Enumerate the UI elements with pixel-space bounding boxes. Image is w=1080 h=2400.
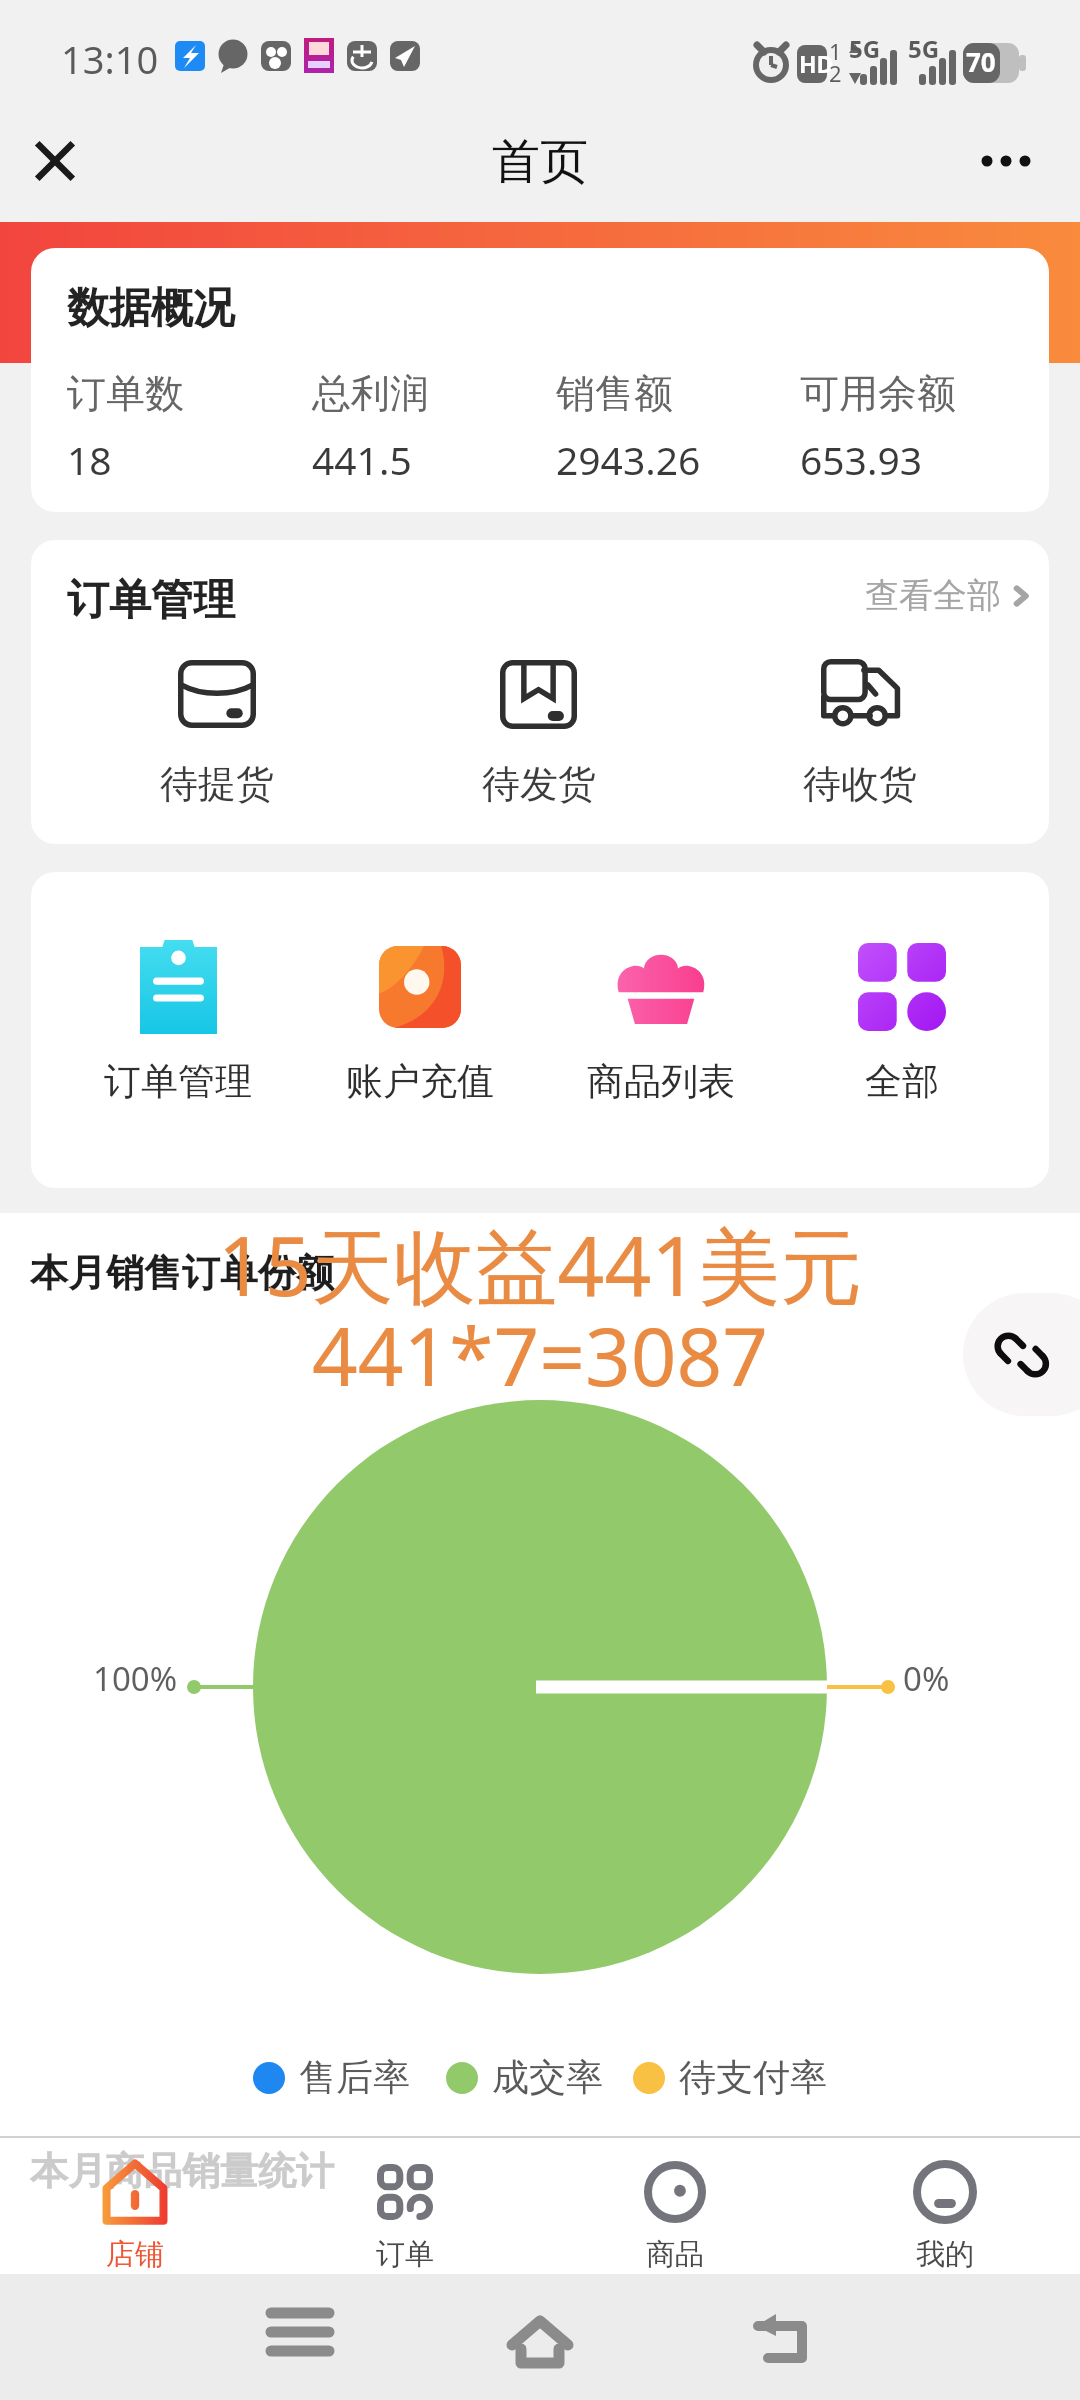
button[interactable]: 账户充值 bbox=[299, 940, 540, 1105]
staticText: 441.5 bbox=[312, 433, 412, 486]
staticText: 总利润 bbox=[312, 369, 429, 418]
staticText: 商品 bbox=[646, 2236, 704, 2273]
button[interactable]: 查看全部 bbox=[865, 574, 1049, 617]
staticText: 本月销售订单份额 bbox=[30, 1249, 334, 1297]
button[interactable]: 待发货 bbox=[378, 658, 699, 808]
staticText: 1 bbox=[829, 36, 842, 66]
button[interactable]: 数据概况 bbox=[31, 248, 1049, 512]
staticText: 成交率 bbox=[492, 2054, 603, 2101]
staticText: 数据概况 bbox=[67, 282, 235, 335]
staticText: 我的 bbox=[916, 2236, 974, 2273]
button[interactable]: Copy link bbox=[963, 1293, 1080, 1416]
button[interactable]: 我的 bbox=[810, 2138, 1080, 2274]
staticText: 全部 bbox=[865, 1058, 939, 1105]
staticText: 订单管理 bbox=[104, 1058, 252, 1105]
staticText: 2 bbox=[829, 58, 842, 88]
staticText: 账户充值 bbox=[346, 1058, 494, 1105]
staticText: 订单管理 bbox=[67, 574, 235, 627]
staticText: 本月商品销量统计 bbox=[30, 2147, 334, 2195]
staticText: 售后率 bbox=[299, 2054, 410, 2101]
staticText: 5G bbox=[849, 32, 881, 65]
staticText: 18 bbox=[67, 433, 112, 486]
button[interactable]: 待收货 bbox=[699, 658, 1020, 808]
button[interactable]: More options bbox=[977, 113, 1073, 209]
staticText: 待发货 bbox=[482, 760, 596, 808]
staticText: 0% bbox=[903, 1656, 950, 1701]
staticText: 70 bbox=[966, 44, 996, 79]
staticText: 2943.26 bbox=[556, 433, 701, 486]
button[interactable]: 全部 bbox=[781, 940, 1022, 1105]
button[interactable]: 订单 bbox=[270, 2138, 540, 2274]
button[interactable]: 待提货 bbox=[56, 658, 378, 808]
button[interactable]: Close bbox=[7, 113, 103, 209]
staticText: 销售额 bbox=[556, 369, 673, 418]
button[interactable]: 订单管理 bbox=[57, 940, 299, 1105]
staticText: 可用余额 bbox=[800, 369, 956, 418]
staticText: 15天收益441美元 bbox=[0, 1208, 1080, 1320]
staticText: 订单 bbox=[376, 2236, 434, 2273]
staticText: 441*7=3087 bbox=[0, 1300, 1080, 1409]
staticText: 查看全部 bbox=[865, 574, 1001, 617]
staticText: 待收货 bbox=[803, 760, 917, 808]
staticText: 5G bbox=[908, 32, 940, 65]
staticText: 商品列表 bbox=[587, 1058, 735, 1105]
staticText: HD bbox=[799, 48, 834, 79]
button[interactable]: 商品列表 bbox=[540, 940, 781, 1105]
other: System navigation bbox=[0, 2274, 1080, 2400]
staticText: 13:10 bbox=[61, 33, 159, 85]
staticText: 待提货 bbox=[160, 760, 274, 808]
staticText: 店铺 bbox=[106, 2236, 164, 2273]
button[interactable]: 店铺 bbox=[0, 2138, 270, 2274]
staticText: 订单数 bbox=[67, 369, 184, 418]
staticText: 首页 bbox=[0, 132, 1080, 209]
staticText: 653.93 bbox=[800, 433, 922, 486]
staticText: 100% bbox=[93, 1656, 178, 1701]
staticText: 待支付率 bbox=[679, 2054, 827, 2101]
button[interactable]: 商品 bbox=[540, 2138, 810, 2274]
